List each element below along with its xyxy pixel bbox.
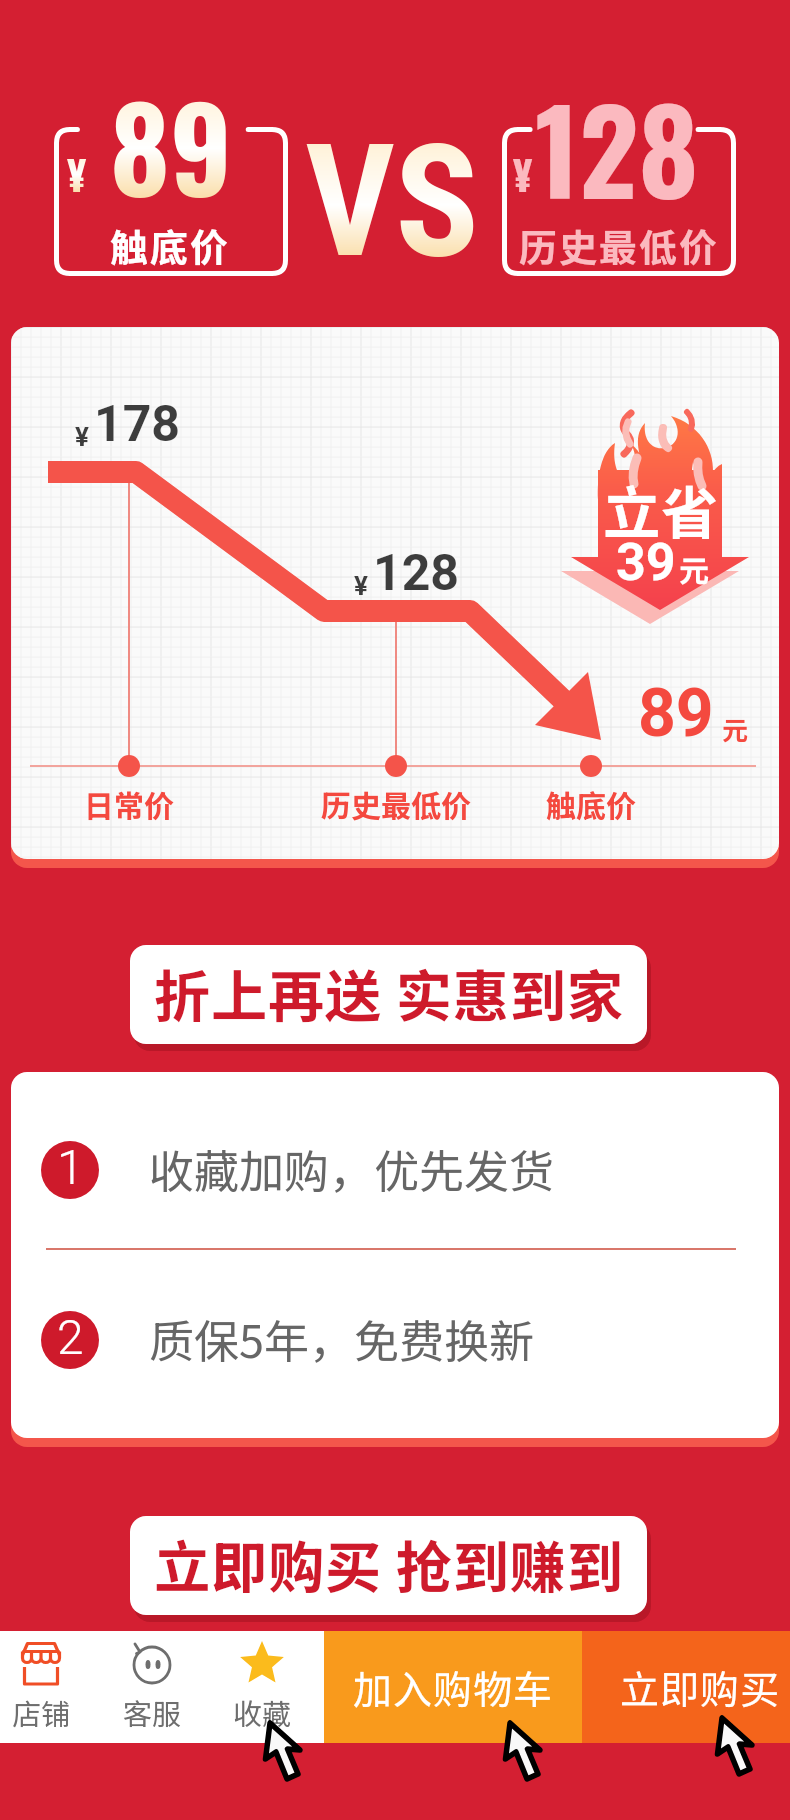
button[interactable]: 客服 bbox=[98, 1631, 206, 1743]
staticText: 元 bbox=[679, 547, 709, 590]
staticText: 日常价 bbox=[84, 782, 174, 825]
button[interactable]: 立即购买 抢到赚到 bbox=[130, 1516, 647, 1615]
staticText: 触底价 bbox=[110, 218, 231, 273]
button[interactable]: 收藏 bbox=[208, 1631, 316, 1743]
staticText: VS bbox=[305, 110, 480, 293]
button[interactable]: 店铺 bbox=[0, 1631, 95, 1743]
staticText: 触底价 bbox=[546, 782, 636, 825]
staticText: 店铺 bbox=[12, 1691, 71, 1733]
staticText: 39 bbox=[616, 532, 676, 593]
staticText: 收藏加购，优先发货 bbox=[149, 1136, 555, 1201]
staticText: 128 bbox=[535, 62, 699, 232]
staticText: 历史最低价 bbox=[321, 782, 471, 825]
staticText: ¥ bbox=[513, 144, 532, 203]
button[interactable]: 折上再送 实惠到家 bbox=[130, 945, 647, 1044]
staticText: 128 bbox=[373, 544, 460, 603]
staticText: 178 bbox=[94, 395, 181, 454]
staticText: 89 bbox=[110, 60, 232, 230]
staticText: 历史最低价 bbox=[519, 218, 720, 273]
staticText: 89 bbox=[638, 675, 714, 752]
button[interactable]: 立即购买 bbox=[582, 1631, 790, 1743]
staticText: 客服 bbox=[123, 1691, 182, 1733]
staticText: 1 bbox=[57, 1141, 84, 1195]
staticText: 立即购买 bbox=[620, 1659, 781, 1715]
staticText: 折上再送 实惠到家 bbox=[154, 952, 624, 1033]
staticText: ¥ bbox=[354, 571, 368, 601]
staticText: ¥ bbox=[67, 144, 86, 203]
staticText: 收藏 bbox=[233, 1691, 292, 1733]
staticText: 2 bbox=[57, 1311, 84, 1365]
staticText: 质保5年，免费换新 bbox=[149, 1306, 534, 1371]
staticText: 元 bbox=[722, 710, 749, 748]
staticText: 立省 bbox=[603, 468, 719, 551]
staticText: ¥ bbox=[75, 422, 89, 452]
staticText: 加入购物车 bbox=[353, 1659, 554, 1715]
staticText: 立即购买 抢到赚到 bbox=[154, 1523, 624, 1604]
button[interactable]: 加入购物车 bbox=[324, 1631, 582, 1743]
